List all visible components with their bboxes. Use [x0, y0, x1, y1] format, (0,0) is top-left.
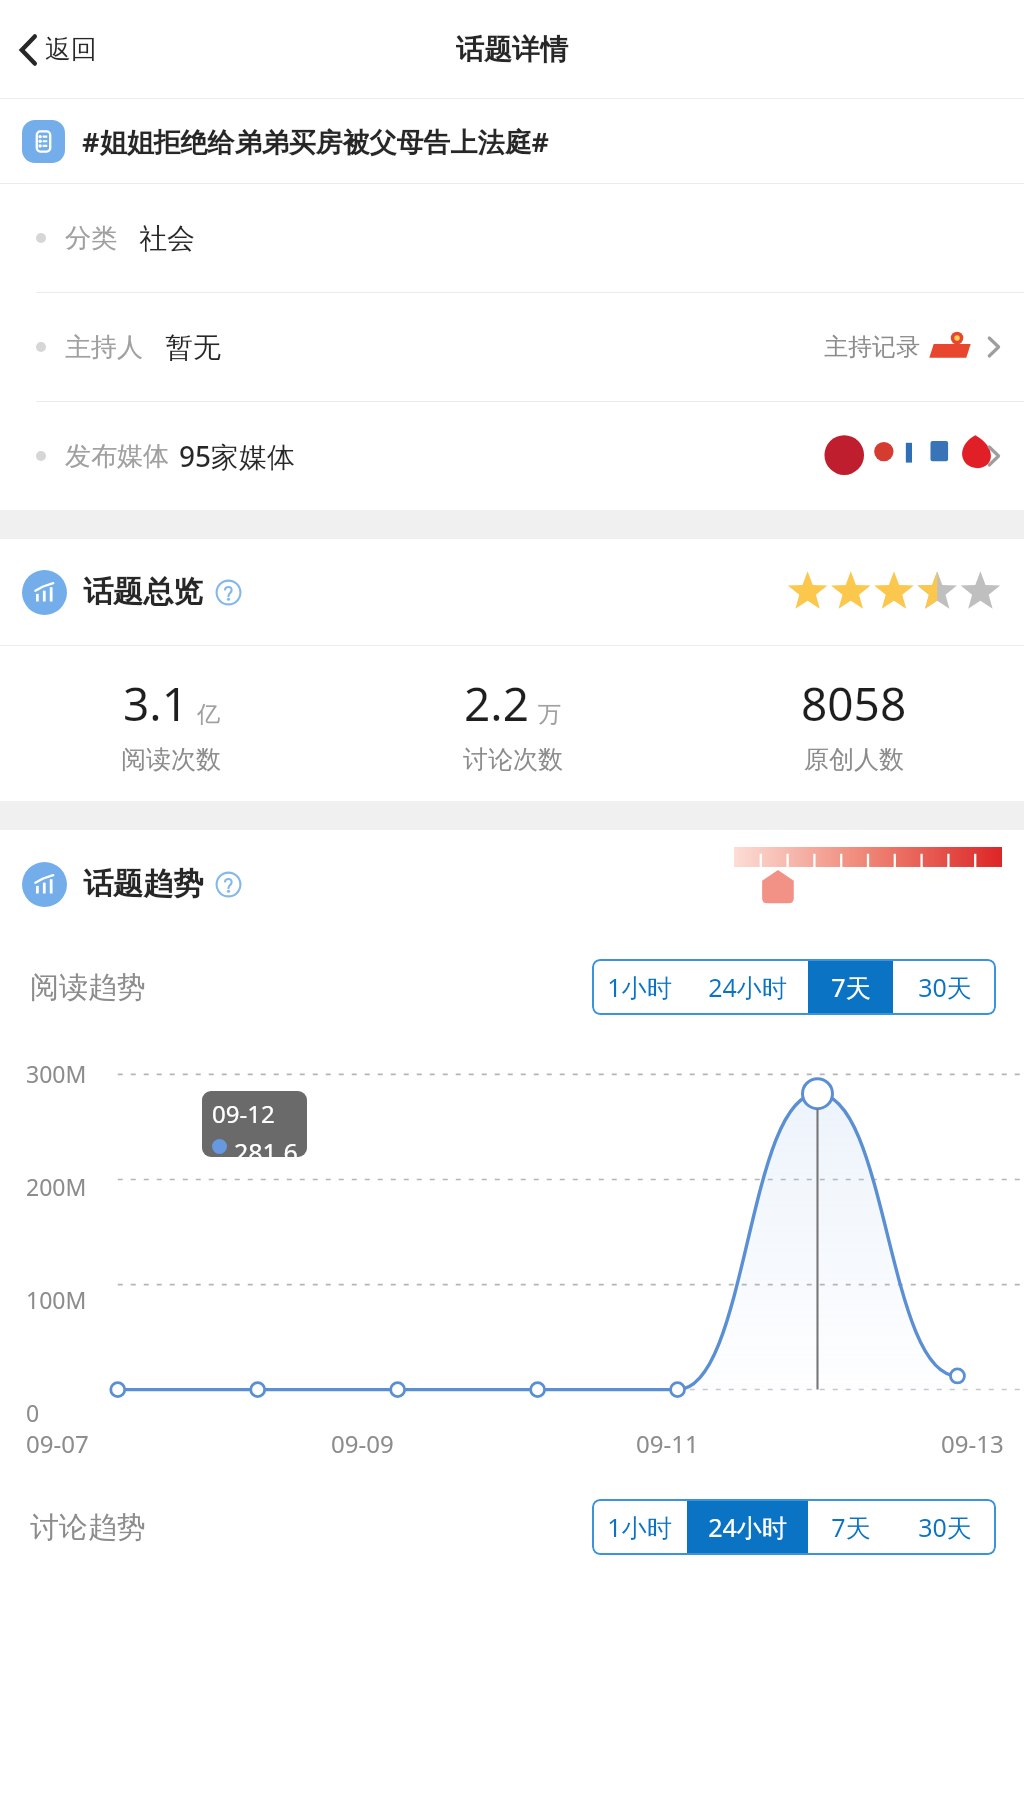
other: Help: [215, 871, 242, 898]
button[interactable]: 8058: [683, 672, 1024, 775]
staticText: 7天: [831, 1510, 871, 1544]
button[interactable]: 话题趋势: [0, 830, 1024, 938]
staticText: 3.1: [123, 672, 188, 735]
staticText: 讨论次数: [463, 744, 563, 775]
staticText: 万: [538, 700, 561, 729]
staticText: 30天: [918, 970, 972, 1004]
staticText: 亿: [197, 700, 220, 729]
staticText: 暂无: [165, 330, 221, 365]
other: Open: [985, 441, 1002, 471]
button[interactable]: 24小时: [687, 959, 808, 1015]
staticText: 200M: [26, 1171, 87, 1202]
button[interactable]: 30天: [893, 959, 996, 1015]
staticText: 281,695,479: [234, 1135, 307, 1157]
staticText: 阅读趋势: [30, 969, 146, 1006]
staticText: 主持人: [65, 331, 143, 364]
button[interactable]: 主持人: [0, 293, 1024, 401]
staticText: 8058: [801, 672, 907, 735]
button[interactable]: 7天: [808, 959, 893, 1015]
staticText: 发布媒体: [65, 440, 169, 473]
button[interactable]: #姐姐拒绝给弟弟买房被父母告上法庭#: [0, 99, 1024, 183]
staticText: #姐姐拒绝给弟弟买房被父母告上法庭#: [82, 123, 549, 160]
button[interactable]: 1小时: [592, 1499, 687, 1555]
staticText: 300M: [26, 1058, 87, 1089]
staticText: 0: [26, 1397, 40, 1428]
staticText: 1小时: [607, 970, 672, 1004]
button[interactable]: 话题总览: [0, 539, 1024, 645]
staticText: 话题趋势: [83, 865, 203, 903]
staticText: 话题总览: [83, 573, 203, 611]
staticText: 话题详情: [456, 32, 568, 67]
staticText: 30天: [918, 1510, 972, 1544]
staticText: 阅读次数: [121, 744, 221, 775]
other: Open: [985, 332, 1002, 362]
button[interactable]: 2.2: [342, 672, 683, 775]
staticText: 原创人数: [804, 744, 904, 775]
button[interactable]: 30天: [893, 1499, 996, 1555]
staticText: 分类: [65, 222, 117, 255]
staticText: 7天: [831, 970, 871, 1004]
button[interactable]: 发布媒体: [0, 402, 1024, 510]
staticText: 95家媒体: [179, 437, 296, 475]
staticText: 09-13: [941, 1427, 1004, 1460]
button[interactable]: 3.1: [0, 672, 342, 775]
staticText: 09-07: [26, 1427, 89, 1460]
staticText: 09-11: [636, 1427, 699, 1460]
staticText: 09-09: [331, 1427, 394, 1460]
button[interactable]: 返回: [0, 0, 119, 99]
button[interactable]: 1小时: [592, 959, 687, 1015]
staticText: 100M: [26, 1284, 87, 1315]
staticText: 主持记录: [824, 332, 920, 362]
staticText: 社会: [139, 221, 195, 256]
button[interactable]: 24小时: [687, 1499, 808, 1555]
staticText: 09-12: [212, 1097, 275, 1130]
staticText: 讨论趋势: [30, 1509, 146, 1546]
other: Help: [215, 579, 242, 606]
staticText: 返回: [45, 33, 97, 66]
staticText: 2.2: [464, 672, 529, 735]
staticText: 24小时: [708, 970, 787, 1004]
button[interactable]: 7天: [808, 1499, 893, 1555]
staticText: 1小时: [607, 1510, 672, 1544]
staticText: 24小时: [708, 1510, 787, 1544]
